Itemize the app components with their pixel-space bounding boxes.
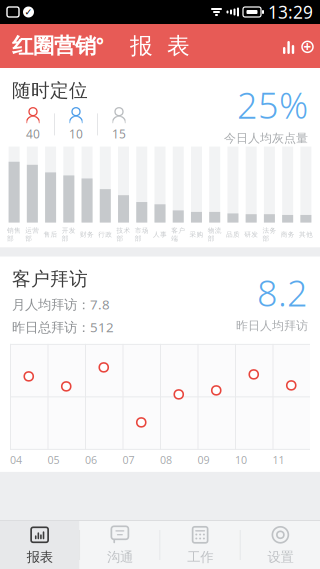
button[interactable]: 沟通 — [80, 521, 159, 569]
staticText: 财务 — [80, 230, 94, 239]
staticText: 行政 — [98, 230, 112, 239]
staticText: 设置 — [267, 549, 293, 565]
staticText: 今日人均灰点量 — [224, 131, 308, 145]
staticText: 人事 — [153, 230, 167, 239]
staticText: 07 — [122, 453, 134, 467]
button[interactable]: 设置 — [241, 521, 320, 569]
button[interactable]: 报表 — [0, 521, 79, 569]
staticText: 04 — [10, 453, 22, 467]
staticText: 红圈营销 — [12, 33, 96, 59]
staticText: 客户拜访 — [12, 267, 88, 290]
staticText: 物流部 — [208, 226, 222, 243]
staticText: 昨日人均拜访 — [236, 318, 308, 333]
staticText: 售后 — [44, 230, 58, 239]
staticText: 品质 — [226, 230, 240, 239]
staticText: 15 — [112, 126, 126, 142]
staticText: + — [303, 38, 311, 56]
staticText: 随时定位 — [12, 79, 88, 102]
staticText: 其他 — [299, 230, 313, 239]
staticText: 客户端 — [171, 226, 185, 243]
staticText: 报 表 — [130, 32, 190, 60]
staticText: ✓ — [24, 7, 32, 17]
staticText: 开发部 — [62, 226, 76, 243]
staticText: 25% — [237, 81, 308, 129]
staticText: 10 — [235, 453, 247, 467]
staticText: 09 — [197, 453, 209, 467]
staticText: 运营部 — [25, 226, 39, 243]
staticText: 05 — [47, 453, 59, 467]
staticText: 市场部 — [135, 226, 149, 243]
staticText: 商务 — [281, 230, 295, 239]
button[interactable]: 工作 — [160, 521, 240, 569]
staticText: 08 — [160, 453, 172, 467]
staticText: 月人均拜访：7.8 — [12, 295, 110, 313]
staticText: 法务部 — [262, 226, 276, 243]
staticText: 沟通 — [107, 549, 133, 565]
staticText: 报表 — [27, 549, 53, 565]
button[interactable]: 红圈营销 — [0, 24, 114, 68]
staticText: 06 — [85, 453, 97, 467]
staticText: 昨日总拜访：512 — [12, 318, 114, 336]
staticText: 10 — [69, 126, 83, 142]
staticText: 工作 — [187, 549, 213, 565]
button[interactable]: 新建报表 — [276, 24, 320, 68]
staticText: 40 — [26, 126, 40, 142]
staticText: 销售部 — [7, 226, 21, 243]
staticText: 11 — [272, 453, 284, 467]
staticText: 研发 — [244, 230, 258, 239]
staticText: 技术部 — [116, 226, 130, 243]
staticText: ° — [96, 33, 104, 58]
staticText: 13:29 — [268, 0, 313, 23]
staticText: 采购 — [189, 230, 203, 239]
staticText: 8.2 — [257, 268, 308, 316]
